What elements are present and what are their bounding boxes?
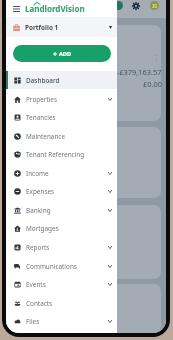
staticText: Income (26, 169, 49, 178)
staticText: Dashboard (26, 76, 60, 85)
staticText: Events (26, 280, 46, 289)
staticText: Communications (26, 262, 77, 271)
staticText: -£379,163.57 (117, 67, 162, 77)
button[interactable]: Banking (6, 201, 117, 219)
staticText: Expenses (26, 187, 55, 196)
staticText: Tenant Referencing (26, 150, 85, 159)
staticText: Files (26, 317, 40, 326)
button[interactable]: Notifications (150, 1, 159, 10)
button[interactable]: Portfolio 1 (6, 17, 117, 37)
button[interactable]: Open navigation menu (11, 3, 22, 14)
staticText: ADD (59, 50, 72, 58)
button[interactable]: Reports (6, 238, 117, 256)
button[interactable]: Dashboard (6, 71, 117, 89)
staticText: Reports (26, 243, 50, 252)
button[interactable]: Tenant Referencing (6, 145, 117, 163)
button[interactable]: ADD (13, 45, 111, 62)
staticText: Portfolio 1 (25, 23, 59, 32)
staticText: Tenancies (26, 113, 56, 122)
button[interactable]: Events (6, 275, 117, 293)
button[interactable]: Files (6, 312, 117, 330)
button[interactable]: Account (114, 1, 123, 10)
staticText: Properties (26, 95, 58, 104)
button[interactable]: Mortgages (6, 219, 117, 237)
button[interactable]: Contacts (6, 294, 117, 312)
staticText: LandlordVision (25, 3, 85, 14)
button[interactable]: Settings (132, 2, 140, 10)
button[interactable]: Maintenance (6, 127, 117, 145)
button[interactable]: Tenancies (6, 108, 117, 126)
button[interactable]: Communications (6, 257, 117, 275)
button[interactable]: Properties (6, 90, 117, 108)
staticText: 20 (152, 3, 158, 9)
staticText: Contacts (26, 299, 53, 308)
button[interactable]: Income (6, 164, 117, 182)
staticText: £0.00 (143, 79, 162, 89)
staticText: Mortgages (26, 224, 59, 233)
staticText: Banking (26, 206, 51, 215)
button[interactable]: Expenses (6, 182, 117, 200)
staticText: Maintenance (26, 132, 66, 141)
